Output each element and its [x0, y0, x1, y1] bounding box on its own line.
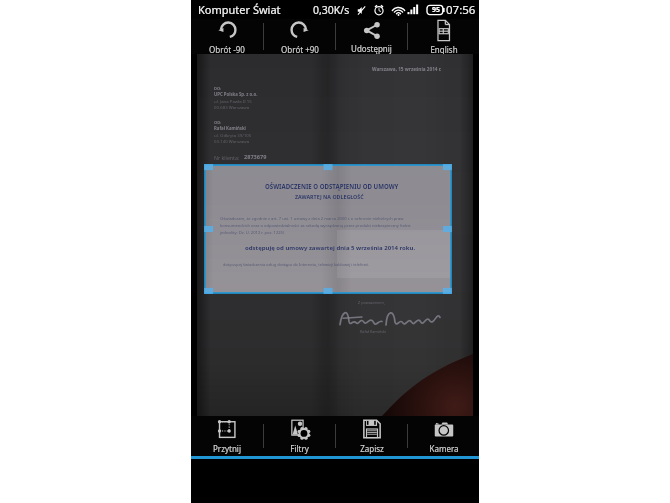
staticText: UPC Polska Sp. z o.o. — [214, 91, 258, 97]
button[interactable]: Filters — [264, 416, 335, 456]
staticText: Warszawa, 15 września 2014 r. — [372, 66, 442, 72]
staticText: 0,30K/s — [313, 3, 350, 17]
staticText: Oświadczam, że zgodnie z art. 7 ust. 1 u… — [220, 216, 404, 222]
staticText: OD: — [214, 120, 222, 125]
staticText: odstępuję od umowy zawartej dnia 5 wrześ… — [245, 244, 416, 252]
staticText: ul. Jana Pawła II 15 — [214, 98, 252, 104]
button[interactable]: Save — [336, 416, 407, 456]
staticText: OŚWIADCZENIE O ODSTĄPIENIU OD UMOWY — [265, 182, 399, 190]
staticText: 2873679 — [244, 153, 267, 161]
staticText: Z poważaniem, — [358, 300, 385, 305]
staticText: Nr klienta: — [214, 154, 240, 161]
button[interactable]: Rotate left 90 degrees — [191, 19, 263, 54]
staticText: Kamera — [429, 443, 459, 454]
staticText: Przytnij — [213, 443, 241, 454]
staticText: Komputer Świat — [198, 2, 281, 17]
staticText: dotyczącej świadczenia usług dostępu do … — [223, 262, 370, 267]
staticText: Filtry — [290, 443, 309, 454]
button[interactable]: Crop — [191, 416, 263, 456]
staticText: English — [430, 44, 458, 54]
staticText: 95 — [432, 5, 441, 15]
staticText: Zapisz — [360, 443, 384, 454]
button[interactable]: Recognize text English — [408, 19, 479, 54]
staticText: 07:56 — [446, 2, 476, 18]
staticText: konsumenckich oraz o odpowiedzialności z… — [220, 223, 411, 229]
button[interactable]: Camera — [408, 416, 479, 456]
staticText: Rafał Kamiński — [360, 329, 387, 334]
staticText: DO: — [214, 86, 222, 91]
staticText: 00-683 Warszawa — [214, 104, 250, 110]
staticText: ZAWARTEJ NA ODLEGŁOŚĆ — [295, 193, 364, 200]
button[interactable]: Rotate right 90 degrees — [264, 19, 335, 54]
staticText: Udostępnij — [351, 43, 392, 54]
staticText: Obrót -90 — [209, 44, 245, 54]
staticText: 03-140 Warszawa — [214, 138, 250, 144]
staticText: Rafał Kamiński — [214, 125, 246, 131]
staticText: jednolity: Dz. U. 2012 r. poz. 1225) — [220, 230, 285, 236]
staticText: Obrót +90 — [281, 44, 319, 54]
button[interactable]: Share — [336, 19, 407, 54]
staticText: ul. Odkryta 39/105 — [214, 132, 252, 138]
